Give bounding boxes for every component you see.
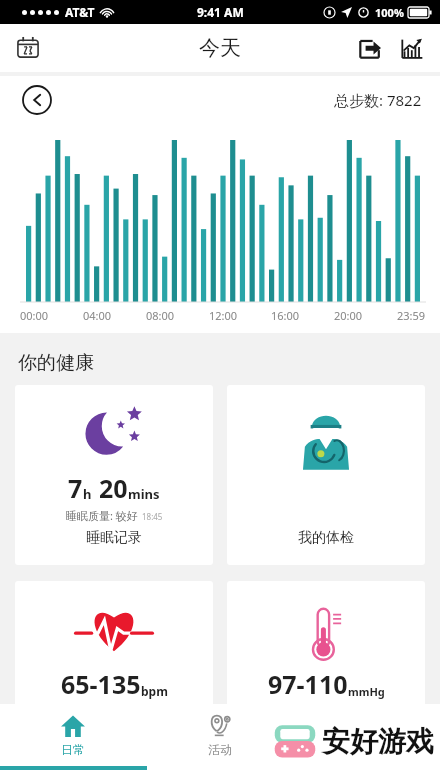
button[interactable]: Calendar [10, 30, 46, 66]
staticText: AT&T [65, 4, 95, 20]
staticText: 你的健康 [18, 351, 94, 375]
staticText: 97-110 [268, 667, 348, 701]
staticText: 我的体检 [298, 529, 354, 547]
staticText: 12:00 [209, 308, 238, 323]
button[interactable]: 7 [15, 385, 213, 565]
staticText: 08:00 [146, 308, 175, 323]
staticText: 18:45 [142, 511, 163, 522]
staticText: 睡眠质量: 较好 [66, 508, 138, 523]
button[interactable]: Statistics [394, 30, 430, 66]
staticText: 9:41 AM [197, 4, 244, 20]
staticText: h [83, 485, 92, 503]
staticText: mmHg [348, 684, 385, 699]
staticText: 20 [99, 471, 128, 505]
staticText: 00:00 [20, 308, 49, 323]
staticText: 23:59 [397, 308, 426, 323]
staticText: 20:00 [334, 308, 363, 323]
button[interactable]: 活动 [146, 704, 293, 766]
button[interactable]: Share [352, 30, 388, 66]
staticText: 16:00 [271, 308, 300, 323]
staticText: 睡眠记录 [86, 529, 142, 547]
staticText: 活动 [208, 742, 232, 757]
button[interactable]: Back [20, 83, 54, 117]
staticText: 安好游戏 [322, 724, 434, 759]
staticText: 04:00 [83, 308, 112, 323]
staticText: 65-135 [61, 667, 141, 701]
button[interactable]: 日常 [0, 704, 146, 766]
staticText: 100% [375, 5, 404, 20]
staticText: 7 [68, 471, 83, 505]
button[interactable]: 65-135 [15, 581, 213, 761]
button[interactable]: 97-110 [227, 581, 425, 761]
button[interactable]: 我的体检 [227, 385, 425, 565]
staticText: 总步数: 7822 [334, 90, 422, 110]
staticText: bpm [141, 683, 168, 699]
staticText: 日常 [61, 742, 85, 757]
staticText: mins [128, 485, 160, 503]
staticText: 今天 [199, 35, 241, 61]
